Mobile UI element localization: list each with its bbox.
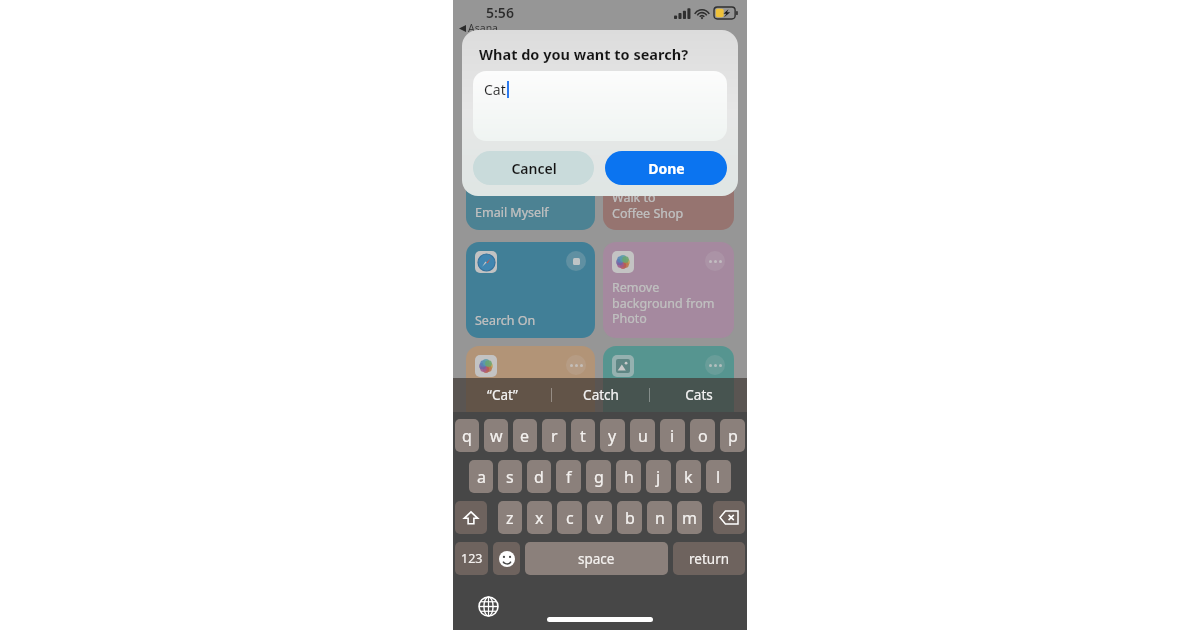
staticText: q bbox=[462, 425, 472, 447]
staticText: k bbox=[684, 466, 693, 488]
button[interactable]: v bbox=[587, 501, 612, 534]
staticText: Remove background from Photo bbox=[612, 279, 715, 326]
staticText: n bbox=[655, 507, 665, 529]
button[interactable]: t bbox=[571, 419, 595, 452]
button[interactable]: a bbox=[469, 460, 493, 493]
staticText: 123 bbox=[461, 550, 483, 567]
staticText: j bbox=[656, 466, 661, 488]
button[interactable]: More options bbox=[603, 242, 734, 338]
staticText: a bbox=[477, 466, 486, 488]
button[interactable]: Cat bbox=[473, 71, 727, 141]
staticText: c bbox=[566, 507, 574, 529]
button[interactable]: q bbox=[455, 419, 479, 452]
staticText: Search On bbox=[475, 312, 536, 329]
staticText: return bbox=[689, 550, 730, 568]
staticText: z bbox=[506, 507, 514, 529]
staticText: s bbox=[506, 466, 514, 488]
button[interactable]: j bbox=[646, 460, 671, 493]
button[interactable]: k bbox=[676, 460, 701, 493]
staticText: r bbox=[551, 425, 558, 447]
staticText: space bbox=[578, 550, 615, 568]
button[interactable]: s bbox=[498, 460, 522, 493]
button[interactable]: More options bbox=[705, 251, 725, 271]
button[interactable]: c bbox=[557, 501, 582, 534]
button[interactable]: Walk to Coffee Shop bbox=[603, 160, 734, 230]
staticText: y bbox=[608, 425, 617, 447]
staticText: What do you want to search? bbox=[479, 44, 689, 64]
button[interactable]: Cats bbox=[650, 378, 747, 412]
staticText: d bbox=[534, 466, 544, 488]
staticText: e bbox=[520, 425, 530, 447]
button[interactable]: r bbox=[542, 419, 566, 452]
staticText: h bbox=[624, 466, 634, 488]
button[interactable]: z bbox=[498, 501, 522, 534]
button[interactable]: m bbox=[677, 501, 702, 534]
staticText: Cat bbox=[484, 80, 506, 99]
staticText: p bbox=[728, 425, 738, 447]
button[interactable]: Backspace bbox=[713, 501, 745, 534]
staticText: Done bbox=[648, 159, 685, 178]
button[interactable]: u bbox=[630, 419, 655, 452]
button[interactable]: h bbox=[616, 460, 641, 493]
button[interactable]: Email Myself bbox=[466, 160, 595, 230]
button[interactable]: o bbox=[690, 419, 715, 452]
staticText: u bbox=[638, 425, 648, 447]
staticText: x bbox=[535, 507, 544, 529]
staticText: w bbox=[490, 425, 503, 447]
button[interactable]: e bbox=[513, 419, 537, 452]
button[interactable]: Catch bbox=[552, 378, 649, 412]
button[interactable]: Done bbox=[605, 151, 727, 185]
staticText: l bbox=[716, 466, 721, 488]
button[interactable]: space bbox=[525, 542, 668, 575]
button[interactable]: Cancel bbox=[473, 151, 594, 185]
button[interactable]: w bbox=[484, 419, 508, 452]
button[interactable]: g bbox=[586, 460, 611, 493]
staticText: o bbox=[698, 425, 708, 447]
staticText: f bbox=[566, 466, 572, 488]
button[interactable]: b bbox=[617, 501, 642, 534]
button[interactable]: y bbox=[600, 419, 625, 452]
staticText: Cancel bbox=[511, 159, 557, 178]
button[interactable]: Shift bbox=[455, 501, 487, 534]
button[interactable]: 123 bbox=[455, 542, 488, 575]
button[interactable]: Emoji bbox=[493, 542, 520, 575]
button[interactable]: p bbox=[720, 419, 745, 452]
button[interactable]: i bbox=[660, 419, 685, 452]
staticText: Cats bbox=[685, 386, 713, 404]
button[interactable]: d bbox=[527, 460, 551, 493]
staticText: g bbox=[594, 466, 604, 488]
staticText: v bbox=[595, 507, 604, 529]
staticText: i bbox=[670, 425, 675, 447]
staticText: m bbox=[682, 507, 697, 529]
button[interactable]: f bbox=[556, 460, 581, 493]
staticText: t bbox=[580, 425, 586, 447]
button[interactable]: “Cat” bbox=[453, 378, 551, 412]
button[interactable]: More options bbox=[466, 346, 595, 442]
button[interactable]: More options bbox=[705, 355, 725, 375]
staticText: “Cat” bbox=[487, 386, 518, 404]
button[interactable]: Stop shortcut bbox=[466, 242, 595, 338]
button[interactable]: Stop shortcut bbox=[566, 251, 586, 271]
button[interactable]: x bbox=[527, 501, 552, 534]
button[interactable]: l bbox=[706, 460, 731, 493]
staticText: 5:56 bbox=[486, 3, 514, 22]
staticText: Asana bbox=[468, 21, 499, 35]
staticText: Catch bbox=[583, 386, 619, 404]
button[interactable]: More options bbox=[566, 355, 586, 375]
staticText: Walk to Coffee Shop bbox=[612, 189, 684, 221]
button[interactable]: More options bbox=[603, 346, 734, 442]
button[interactable]: return bbox=[673, 542, 745, 575]
button[interactable]: Change keyboard bbox=[473, 591, 503, 621]
button[interactable]: n bbox=[647, 501, 672, 534]
staticText: Email Myself bbox=[475, 204, 549, 221]
staticText: b bbox=[625, 507, 635, 529]
